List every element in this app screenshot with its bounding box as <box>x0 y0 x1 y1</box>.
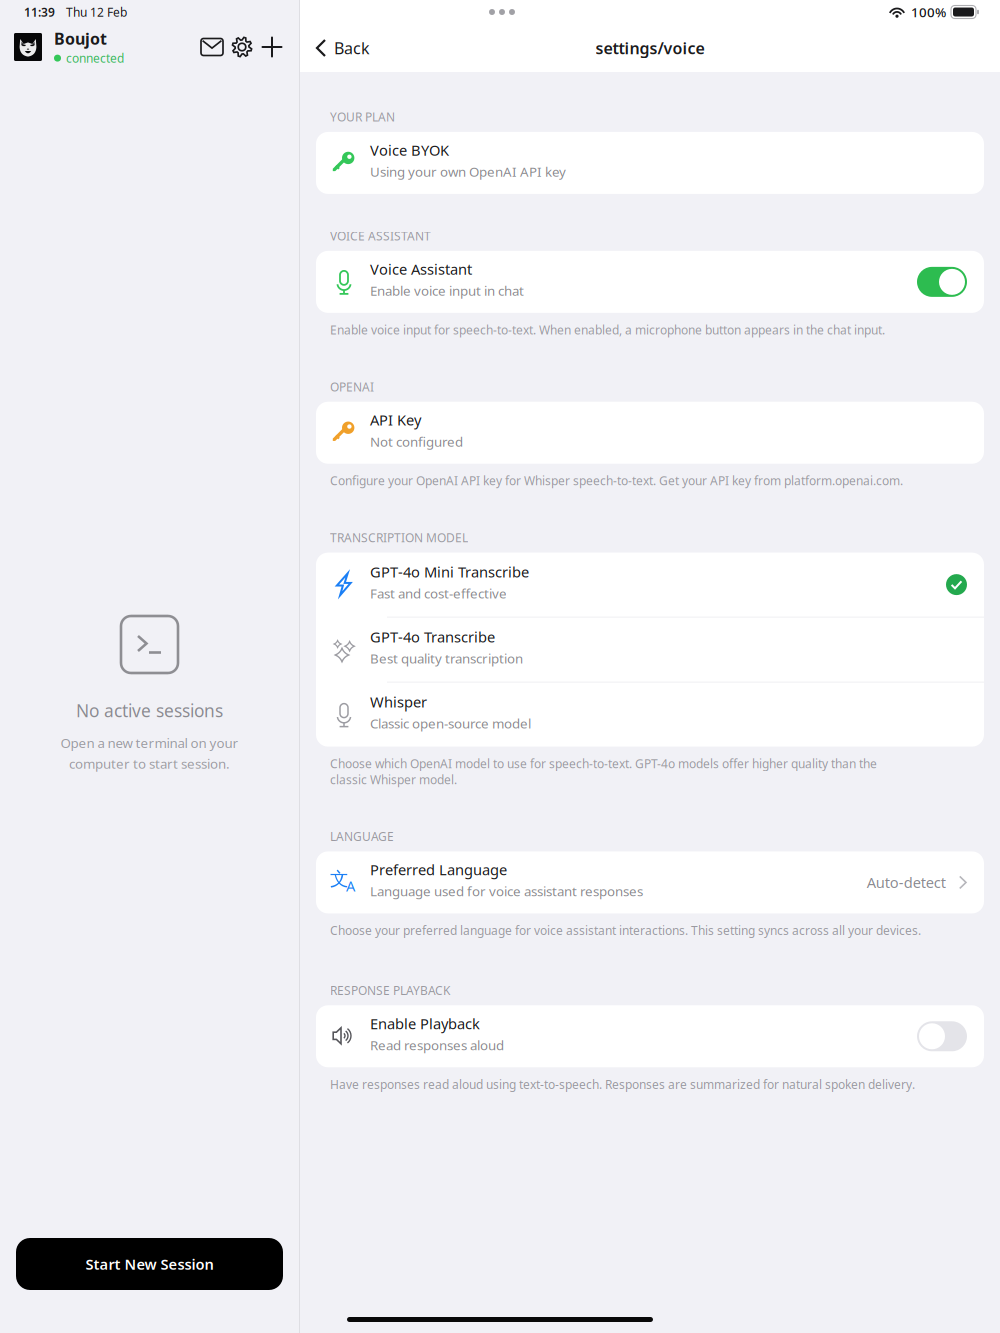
staticText: Start New Session <box>85 1254 213 1274</box>
staticText: Enable Playback <box>370 1014 480 1033</box>
button[interactable]: Messages <box>199 33 225 61</box>
staticText: GPT-4o Mini Transcribe <box>370 562 529 581</box>
staticText: Configure your OpenAI API key for Whispe… <box>330 473 903 489</box>
button[interactable]: Settings <box>229 33 255 61</box>
staticText: Whisper <box>370 692 427 711</box>
staticText: API Key <box>370 410 421 430</box>
staticText: Boujot <box>54 28 107 49</box>
button[interactable]: Back <box>316 33 378 63</box>
staticText: Back <box>334 37 370 59</box>
staticText: 11:39 <box>24 4 55 20</box>
button[interactable]: Start New Session <box>16 1238 283 1290</box>
staticText: computer to start session. <box>69 755 230 772</box>
staticText: Voice Assistant <box>370 259 472 279</box>
staticText: Read responses aloud <box>370 1036 504 1054</box>
button[interactable]: New session <box>259 33 285 61</box>
staticText: Auto-detect <box>867 873 946 892</box>
staticText: Not configured <box>370 433 463 450</box>
staticText: VOICE ASSISTANT <box>330 228 431 244</box>
staticText: Thu 12 Feb <box>66 4 127 20</box>
staticText: Choose your preferred language for voice… <box>330 922 921 938</box>
staticText: 100% <box>911 3 946 21</box>
button[interactable]: Voice Assistant toggle <box>917 267 967 297</box>
staticText: settings/voice <box>595 37 704 59</box>
button[interactable]: GPT-4o Mini Transcribe <box>316 553 984 617</box>
staticText: Enable voice input in chat <box>370 282 524 299</box>
button[interactable]: 文 <box>316 851 984 913</box>
staticText: Classic open-source model <box>370 714 531 732</box>
button[interactable]: Enable Playback toggle <box>917 1021 967 1051</box>
staticText: LANGUAGE <box>330 828 394 844</box>
button[interactable]: GPT-4o Transcribe <box>316 618 984 682</box>
staticText: Enable voice input for speech-to-text. W… <box>330 322 885 338</box>
staticText: Choose which OpenAI model to use for spe… <box>330 756 877 787</box>
staticText: Using your own OpenAI API key <box>370 163 566 180</box>
staticText: Have responses read aloud using text-to-… <box>330 1076 915 1092</box>
staticText: OPENAI <box>330 379 374 395</box>
button[interactable]: API Key <box>316 402 984 464</box>
staticText: Open a new terminal on your <box>60 734 238 752</box>
staticText: Preferred Language <box>370 860 507 879</box>
staticText: YOUR PLAN <box>330 109 395 125</box>
staticText: Language used for voice assistant respon… <box>370 882 643 900</box>
staticText: Best quality transcription <box>370 649 523 667</box>
staticText: 文 <box>330 867 349 890</box>
staticText: No active sessions <box>76 699 223 722</box>
staticText: TRANSCRIPTION MODEL <box>330 530 468 546</box>
staticText: Voice BYOK <box>370 140 449 160</box>
staticText: GPT-4o Transcribe <box>370 627 495 646</box>
staticText: Fast and cost-effective <box>370 584 507 602</box>
staticText: connected <box>66 50 124 66</box>
staticText: RESPONSE PLAYBACK <box>330 982 450 998</box>
staticText: A <box>346 876 355 896</box>
button[interactable]: Whisper <box>316 683 984 747</box>
